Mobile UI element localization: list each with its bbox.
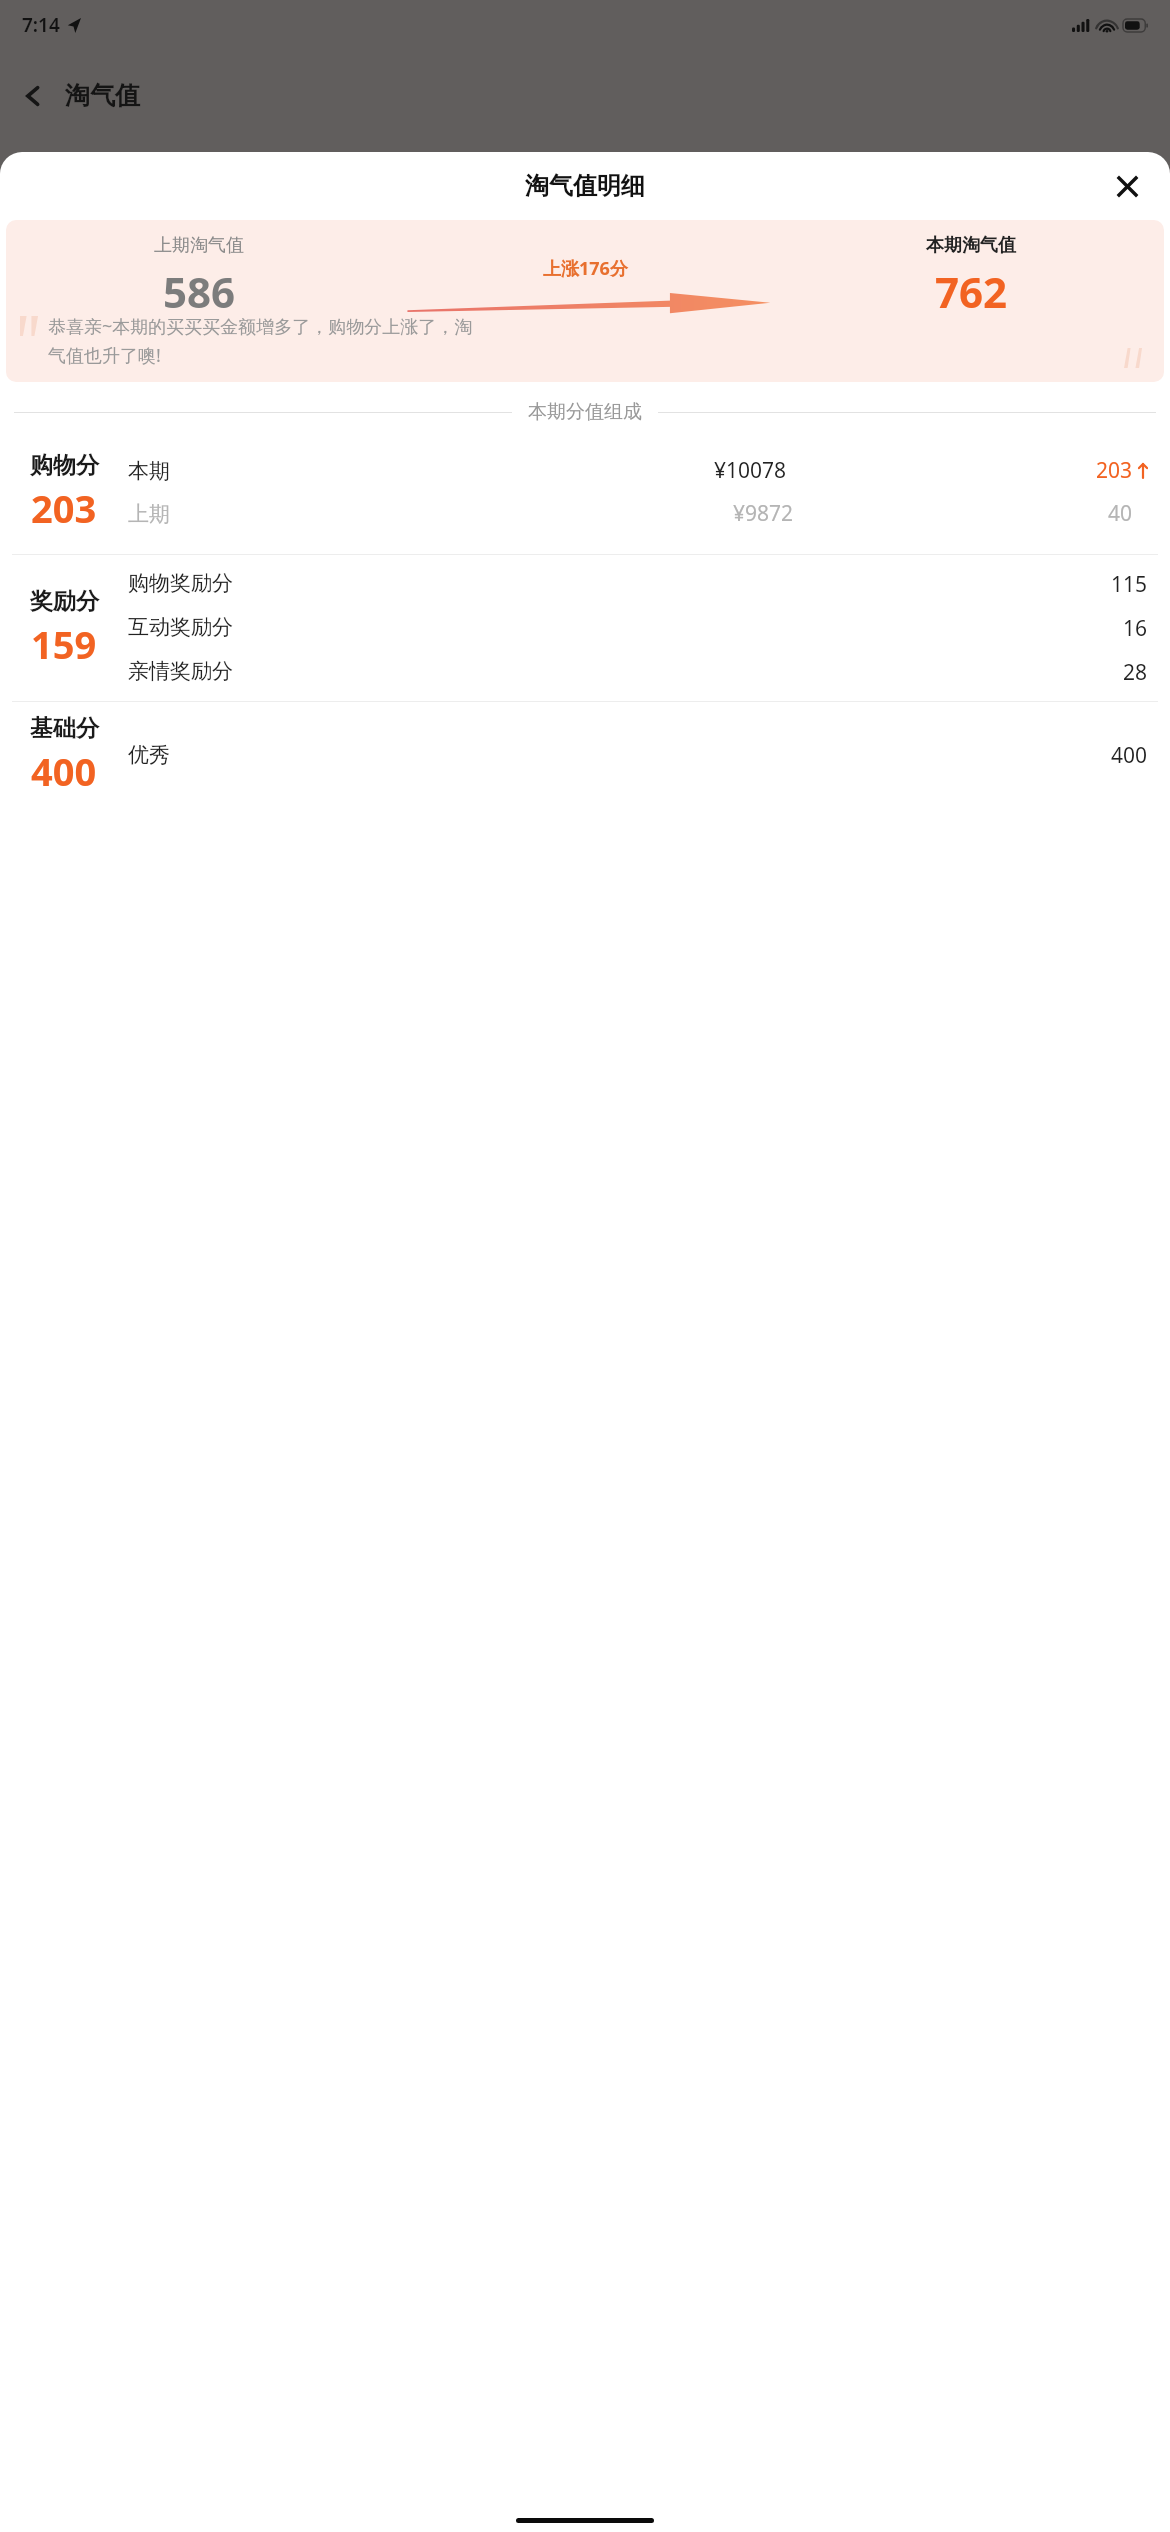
button[interactable]: 关闭 xyxy=(1110,169,1144,203)
staticText: 上期 xyxy=(128,501,210,527)
staticText: 购物奖励分 xyxy=(128,570,233,596)
staticText: 亲情奖励分 xyxy=(128,658,233,684)
staticText: 淘气值 xyxy=(65,80,140,111)
staticText: 400 xyxy=(1111,741,1148,770)
staticText: 本期 xyxy=(128,458,210,484)
staticText: 400 xyxy=(31,745,97,797)
staticText: 203 xyxy=(1096,456,1133,485)
staticText: 7:14 xyxy=(22,12,60,38)
staticText: ¥9872 xyxy=(661,499,793,528)
staticText: 28 xyxy=(1123,658,1148,687)
staticText: ¥10078 xyxy=(654,456,786,485)
staticText: 基础分 xyxy=(30,714,99,743)
staticText: 762 xyxy=(935,263,1008,320)
staticText: 每月8号更新 本期时间2021.1-2021.12 xyxy=(141,275,430,298)
staticText: 购物分 xyxy=(30,451,99,480)
staticText: 586 xyxy=(163,263,236,320)
staticText: 上涨176分 xyxy=(543,256,628,281)
staticText: 159 xyxy=(31,618,97,670)
staticText: 40 xyxy=(1108,499,1133,528)
staticText: 本期淘气值 xyxy=(926,234,1016,257)
staticText: 上期淘气值 xyxy=(154,234,244,257)
staticText: 互动奖励分 xyxy=(128,614,233,640)
staticText: 762 xyxy=(18,208,125,292)
staticText: 恭喜亲~本期的买买买金额增多了，购物分上涨了，淘 气值也升了噢! xyxy=(48,314,473,367)
staticText: 203 xyxy=(31,482,97,534)
staticText: 奖励分 xyxy=(30,587,99,616)
staticText: 优秀 xyxy=(128,742,170,768)
staticText: 距1000分还差238分 xyxy=(161,230,315,253)
staticText: 淘气值明细 xyxy=(525,171,645,201)
staticText: 本期分值组成 xyxy=(528,400,642,424)
staticText: 16 xyxy=(1123,614,1148,643)
staticText: 115 xyxy=(1111,570,1148,599)
